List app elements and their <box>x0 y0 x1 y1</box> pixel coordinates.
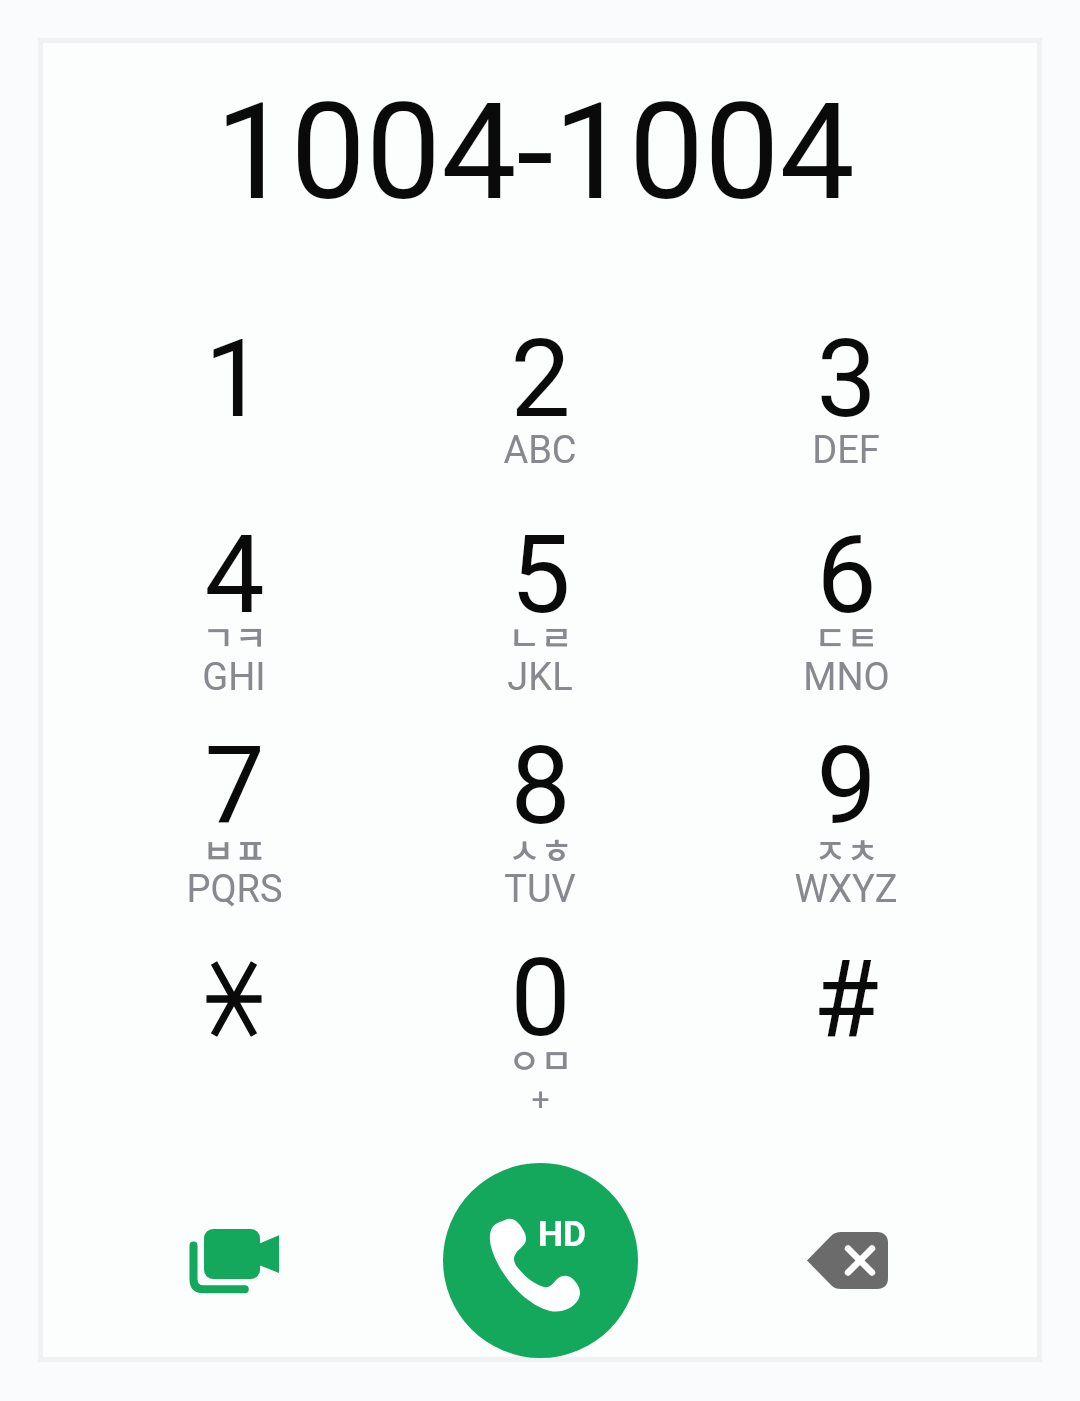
button[interactable]: 2 <box>387 295 693 505</box>
staticText: HD <box>538 1213 587 1255</box>
staticText: ㅅㅎ <box>508 823 573 874</box>
button[interactable]: 3 <box>693 295 999 505</box>
staticText: ㄱㅋ <box>202 610 267 661</box>
staticText: 4 <box>204 513 265 638</box>
button[interactable]: 4 <box>81 506 387 716</box>
staticText: ㄷㅌ <box>814 610 879 661</box>
staticText: 0 <box>510 936 571 1061</box>
button[interactable]: 7 <box>81 717 387 927</box>
staticText: 9 <box>816 724 877 849</box>
staticText: + <box>531 1080 550 1118</box>
staticText: ㅂㅍ <box>202 823 267 874</box>
button[interactable]: * <box>81 927 387 1137</box>
button[interactable]: # <box>693 927 999 1137</box>
staticText: WXYZ <box>794 867 898 912</box>
staticText: MNO <box>803 655 890 700</box>
staticText: 8 <box>510 724 571 849</box>
staticText: DEF <box>812 428 880 473</box>
staticText: 1 <box>204 317 265 442</box>
staticText: 5 <box>510 513 571 638</box>
staticText: ㄴㄹ <box>508 610 573 661</box>
staticText: # <box>813 938 879 1063</box>
staticText: ㅇㅁ <box>508 1033 573 1084</box>
staticText: PQRS <box>186 867 283 912</box>
button[interactable]: 1 <box>81 295 387 505</box>
staticText: GHI <box>202 655 266 700</box>
staticText: 7 <box>204 724 265 849</box>
button[interactable]: 5 <box>387 506 693 716</box>
staticText: ㅈㅊ <box>814 823 879 874</box>
button[interactable]: 9 <box>693 717 999 927</box>
button[interactable]: Call <box>443 1163 638 1358</box>
staticText: 1004-1004 <box>215 74 855 231</box>
staticText: 6 <box>816 513 877 638</box>
staticText: 2 <box>510 317 571 442</box>
button[interactable]: 0 <box>387 927 693 1137</box>
staticText: ABC <box>503 428 577 473</box>
button[interactable]: 6 <box>693 506 999 716</box>
button[interactable]: Video call <box>154 1180 314 1340</box>
button[interactable]: Backspace <box>766 1180 926 1340</box>
staticText: 3 <box>816 317 877 442</box>
staticText: JKL <box>507 655 573 700</box>
button[interactable]: 8 <box>387 717 693 927</box>
staticText: TUV <box>504 867 576 912</box>
